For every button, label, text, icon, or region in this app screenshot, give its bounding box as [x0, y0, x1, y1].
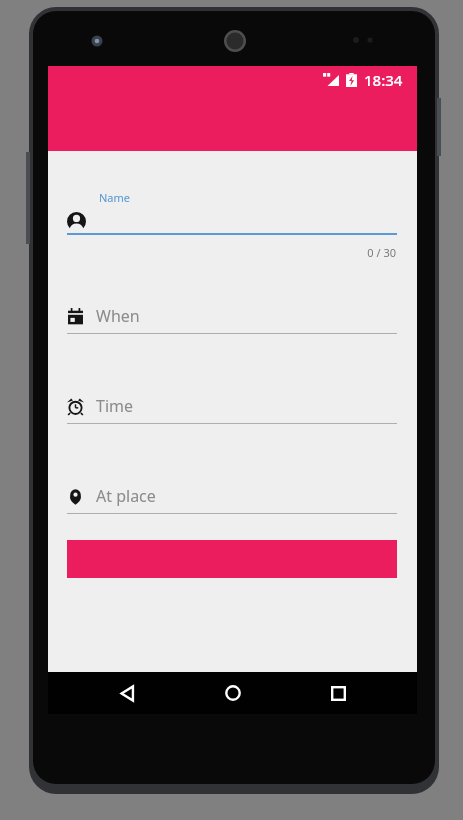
button[interactable]: At place: [48, 485, 417, 514]
staticText: Name: [99, 190, 131, 205]
button[interactable]: Recents: [312, 672, 364, 714]
button[interactable]: Time: [48, 395, 417, 424]
button[interactable]: Home: [207, 672, 259, 714]
other: Name: [67, 212, 86, 231]
staticText: 0 / 30: [48, 245, 396, 260]
staticText: Time: [96, 395, 134, 417]
staticText: 18:34: [364, 70, 403, 90]
button[interactable]: Name: [48, 190, 417, 260]
button[interactable]: Back: [101, 672, 153, 714]
button[interactable]: When: [48, 305, 417, 334]
staticText: When: [96, 305, 140, 327]
staticText: At place: [96, 485, 156, 507]
